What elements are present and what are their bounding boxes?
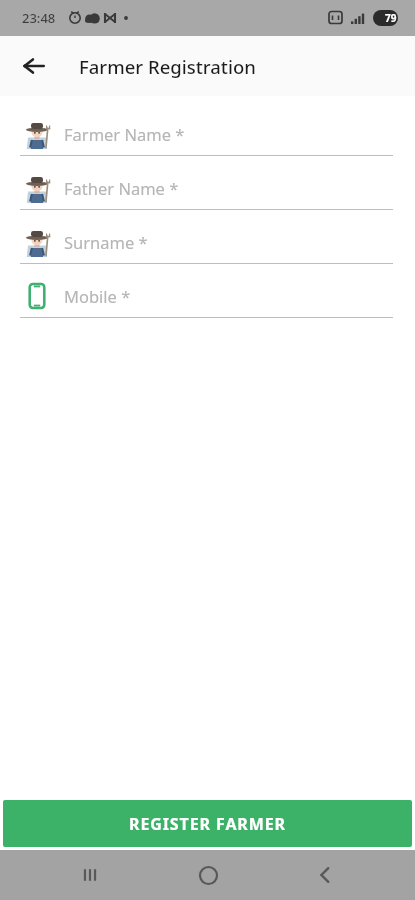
staticText: Father Name * <box>64 177 179 199</box>
staticText: Surname * <box>64 231 148 253</box>
button[interactable]: Home <box>180 850 236 900</box>
staticText: Farmer Registration <box>79 54 256 79</box>
staticText: 79 <box>385 11 397 25</box>
button[interactable]: Back <box>12 44 56 88</box>
button[interactable]: Surname * <box>0 221 415 264</box>
button[interactable]: Father Name * <box>0 167 415 210</box>
button[interactable]: Mobile * <box>0 275 415 318</box>
button[interactable]: Recent apps <box>62 850 118 900</box>
button[interactable]: Back <box>297 850 353 900</box>
staticText: Mobile * <box>64 285 131 307</box>
staticText: Farmer Name * <box>64 123 185 145</box>
staticText: REGISTER FARMER <box>129 813 287 835</box>
button[interactable]: Farmer Name * <box>0 113 415 156</box>
staticText: 23:48 <box>22 9 56 27</box>
button[interactable]: REGISTER FARMER <box>3 800 412 847</box>
